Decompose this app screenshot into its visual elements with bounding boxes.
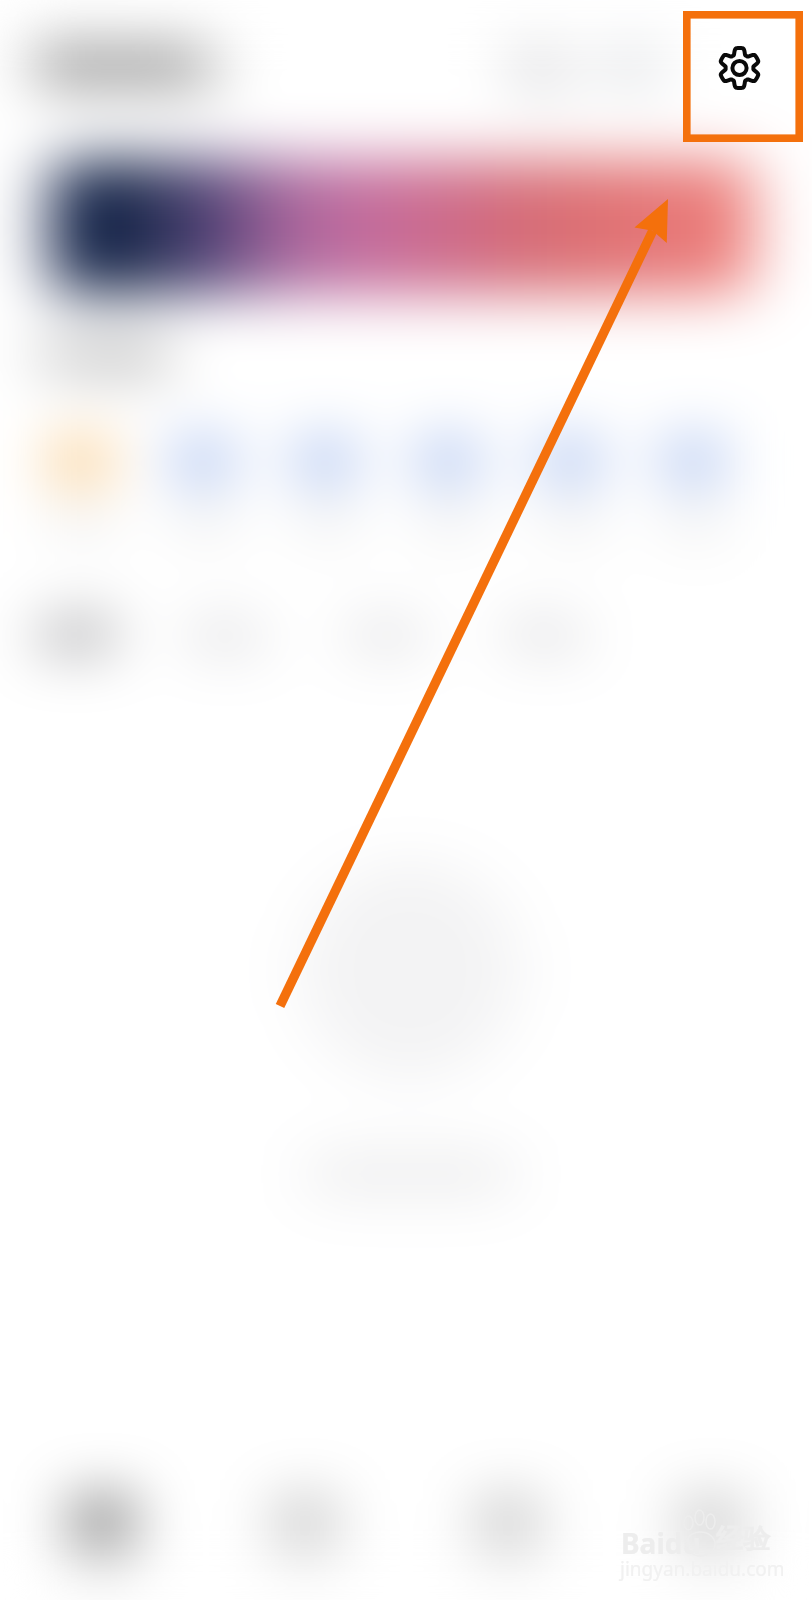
staticText: 首页 — [689, 1556, 733, 1584]
staticText: 我的钱包 — [36, 40, 212, 92]
staticText: 功能 — [57, 510, 103, 539]
button[interactable]: 功能 — [272, 430, 378, 539]
button[interactable]: 全部 — [38, 614, 112, 656]
button[interactable]: 功能 — [150, 430, 256, 539]
staticText: 首页 — [80, 1556, 124, 1584]
button[interactable]: 功能 — [395, 430, 501, 539]
button[interactable]: Home — [0, 1496, 203, 1584]
button[interactable]: Settings — [683, 11, 803, 142]
button[interactable]: 我的钱包 — [36, 40, 224, 92]
staticText: 全部 — [41, 614, 109, 656]
staticText: 首页 — [486, 1556, 530, 1584]
button[interactable]: Tab — [406, 1496, 609, 1584]
staticText: 常用功能 — [40, 338, 164, 376]
button[interactable]: 功能 — [27, 430, 133, 539]
button[interactable]: 功能 — [640, 430, 746, 539]
button[interactable]: 功能 — [517, 430, 623, 539]
button[interactable]: Tab — [203, 1496, 406, 1584]
staticText: 首页 — [283, 1556, 327, 1584]
button[interactable]: 常用功能 — [40, 338, 176, 376]
button[interactable]: Tab — [609, 1496, 812, 1584]
